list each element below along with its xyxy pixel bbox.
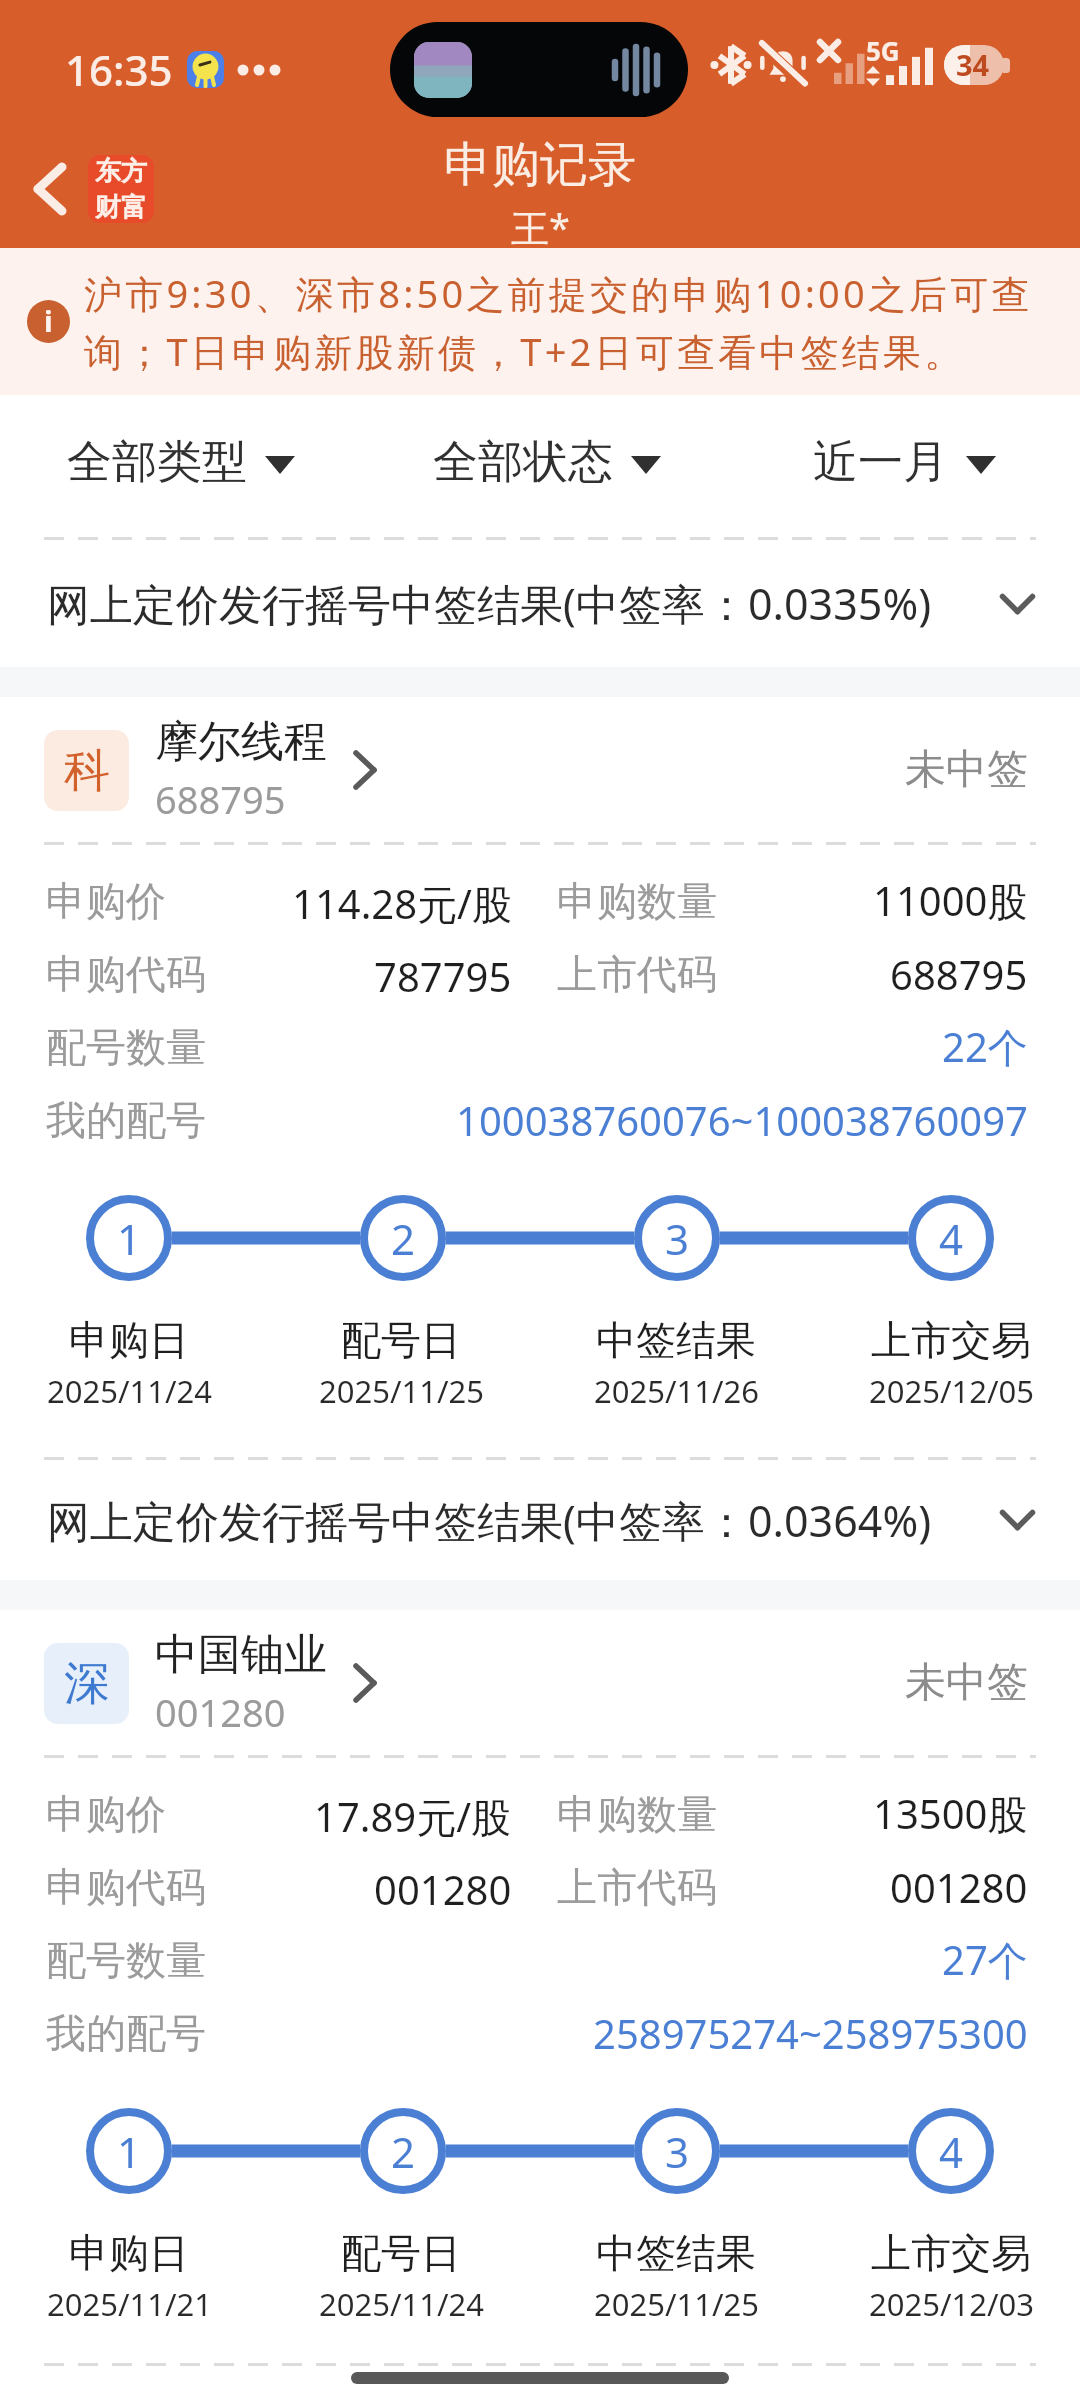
staticText: 申购日	[69, 1315, 189, 1365]
other: Expand	[1000, 594, 1035, 614]
staticText: 2025/11/26	[594, 1370, 759, 1412]
staticText: 114.28元/股	[292, 876, 512, 926]
staticText: 688795	[155, 773, 286, 825]
staticText: 2025/11/25	[319, 1370, 484, 1412]
staticText: 财富	[95, 191, 147, 223]
staticText: 2025/11/25	[594, 2283, 759, 2325]
button[interactable]: 22个	[932, 1011, 1038, 1082]
staticText: 2025/11/24	[319, 2283, 484, 2325]
staticText: 2	[391, 2123, 416, 2180]
staticText: 1	[117, 2123, 142, 2180]
staticText: 3	[665, 1210, 690, 1267]
staticText: 787795	[374, 949, 512, 999]
staticText: 全部状态	[433, 434, 613, 491]
staticText: 申购日	[69, 2228, 189, 2278]
staticText: 2025/11/21	[47, 2283, 212, 2325]
staticText: 22个	[942, 1019, 1028, 1074]
staticText: 未中签	[905, 744, 1028, 796]
staticText: 3	[665, 2123, 690, 2180]
staticText: 上市代码	[557, 1862, 717, 1912]
staticText: 001280	[890, 1860, 1028, 1914]
staticText: 13500股	[873, 1786, 1028, 1841]
staticText: 27个	[942, 1932, 1028, 1987]
staticText: 询；T日申购新股新债，T+2日可查看中签结果。	[84, 325, 966, 377]
staticText: 16:35	[65, 41, 173, 98]
other: Expand	[1000, 1510, 1035, 1530]
staticText: 申购记录	[444, 135, 636, 195]
button[interactable]: 网上定价发行摇号中签结果(中签率：0.0364%)	[0, 1460, 1080, 1580]
button[interactable]: 27个	[932, 1924, 1038, 1995]
staticText: 未中签	[905, 1657, 1028, 1709]
button[interactable]: 258975274~258975300	[583, 1998, 1038, 2068]
button[interactable]: 全部类型	[57, 420, 305, 505]
staticText: 上市交易	[871, 1315, 1031, 1365]
staticText: 申购代码	[46, 1862, 206, 1912]
staticText: 近一月	[813, 434, 948, 491]
staticText: 2025/12/03	[869, 2283, 1034, 2325]
staticText: 1	[117, 1210, 142, 1267]
staticText: 2025/12/05	[869, 1370, 1034, 1412]
staticText: 沪市9:30、深市8:50之前提交的申购10:00之后可查	[84, 267, 1033, 319]
staticText: 申购价	[46, 876, 166, 926]
staticText: 34	[956, 45, 990, 84]
button[interactable]: 100038760076~100038760097	[446, 1085, 1038, 1155]
staticText: 配号日	[341, 1315, 461, 1365]
staticText: 100038760076~100038760097	[456, 1093, 1028, 1147]
staticText: 我的配号	[46, 1095, 206, 1145]
button[interactable]: 近一月	[803, 420, 1006, 505]
staticText: 网上定价发行摇号中签结果(中签率：0.0364%)	[47, 1491, 1000, 1550]
staticText: 4	[939, 2123, 964, 2180]
button[interactable]: 全部状态	[423, 420, 671, 505]
staticText: 上市交易	[871, 2228, 1031, 2278]
staticText: 申购价	[46, 1789, 166, 1839]
button[interactable]: Back	[18, 141, 172, 237]
staticText: i	[44, 301, 53, 340]
staticText: 摩尔线程	[155, 715, 327, 769]
staticText: 中签结果	[596, 2228, 756, 2278]
staticText: 上市代码	[557, 949, 717, 999]
staticText: 17.89元/股	[314, 1789, 512, 1839]
staticText: 中签结果	[596, 1315, 756, 1365]
button[interactable]: 网上定价发行摇号中签结果(中签率：0.0335%)	[0, 540, 1080, 667]
button[interactable]: 深	[0, 1610, 1080, 1755]
staticText: 配号数量	[46, 1022, 206, 1072]
staticText: 申购数量	[557, 876, 717, 926]
staticText: 深	[64, 1655, 110, 1713]
staticText: 688795	[890, 947, 1028, 1001]
staticText: 科	[64, 742, 110, 800]
staticText: 2	[391, 1210, 416, 1267]
staticText: 配号日	[341, 2228, 461, 2278]
staticText: 5G	[866, 33, 900, 68]
staticText: 东方	[95, 155, 147, 188]
staticText: 258975274~258975300	[593, 2006, 1028, 2060]
button[interactable]: 科	[0, 697, 1080, 842]
staticText: 申购代码	[46, 949, 206, 999]
staticText: 我的配号	[46, 2008, 206, 2058]
staticText: 001280	[155, 1686, 286, 1738]
staticText: 配号数量	[46, 1935, 206, 1985]
staticText: 王*	[511, 201, 570, 253]
staticText: 2025/11/24	[47, 1370, 212, 1412]
staticText: 中国铀业	[155, 1628, 327, 1682]
staticText: 4	[939, 1210, 964, 1267]
staticText: 全部类型	[67, 434, 247, 491]
staticText: 申购数量	[557, 1789, 717, 1839]
staticText: 网上定价发行摇号中签结果(中签率：0.0335%)	[47, 574, 1000, 633]
staticText: 11000股	[873, 873, 1028, 928]
staticText: 001280	[374, 1862, 512, 1912]
